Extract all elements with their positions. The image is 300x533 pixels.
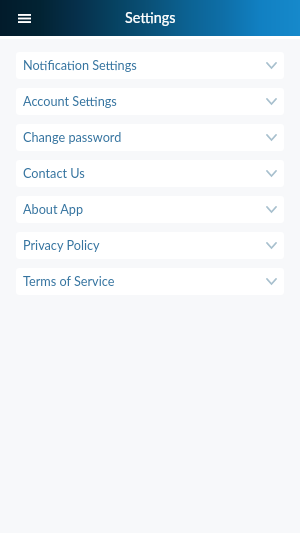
staticText: Settings (125, 9, 176, 26)
button[interactable]: Privacy Policy (16, 232, 284, 259)
staticText: Notification Settings (23, 57, 266, 72)
staticText: Change password (23, 129, 266, 144)
button[interactable]: About App (16, 196, 284, 223)
staticText: Account Settings (23, 93, 266, 108)
button[interactable]: Notification Settings (16, 52, 284, 79)
button[interactable]: Change password (16, 124, 284, 151)
staticText: Contact Us (23, 165, 266, 180)
staticText: About App (23, 201, 266, 216)
button[interactable]: Open navigation menu (6, 0, 42, 36)
button[interactable]: Contact Us (16, 160, 284, 187)
button[interactable]: Account Settings (16, 88, 284, 115)
button[interactable]: Terms of Service (16, 268, 284, 295)
staticText: Terms of Service (23, 273, 266, 288)
staticText: Privacy Policy (23, 237, 266, 252)
